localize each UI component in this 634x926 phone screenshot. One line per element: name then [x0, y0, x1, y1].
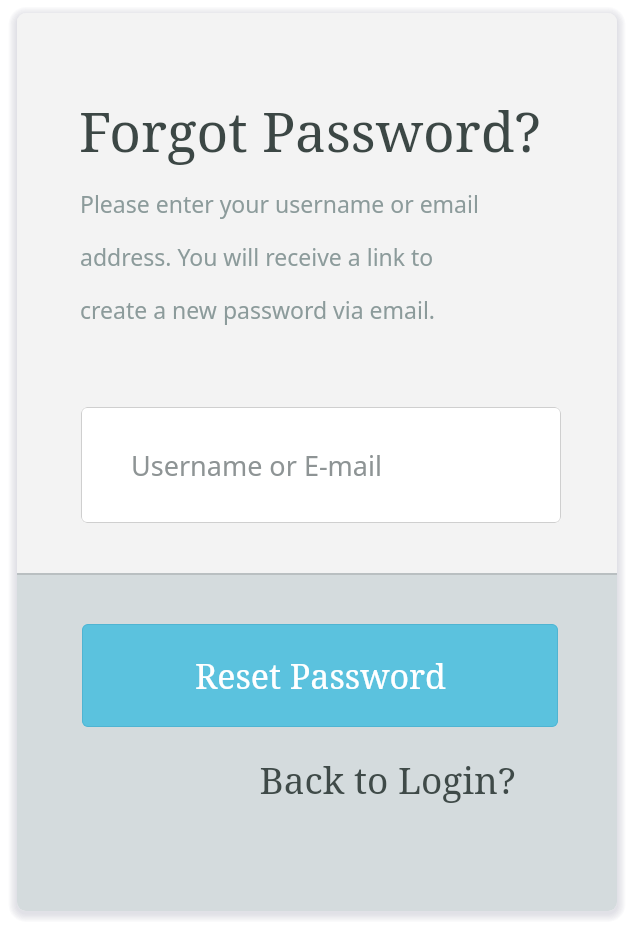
staticText: Forgot Password? — [79, 93, 541, 168]
button[interactable]: Back to Login? — [220, 751, 554, 807]
staticText: Reset Password — [195, 653, 446, 699]
staticText: Please enter your username or email addr… — [80, 188, 479, 325]
staticText: Username or E-mail — [131, 447, 382, 484]
button[interactable]: Reset Password — [82, 624, 558, 727]
button[interactable]: Username or E-mail — [81, 407, 561, 523]
staticText: Back to Login? — [259, 754, 516, 804]
